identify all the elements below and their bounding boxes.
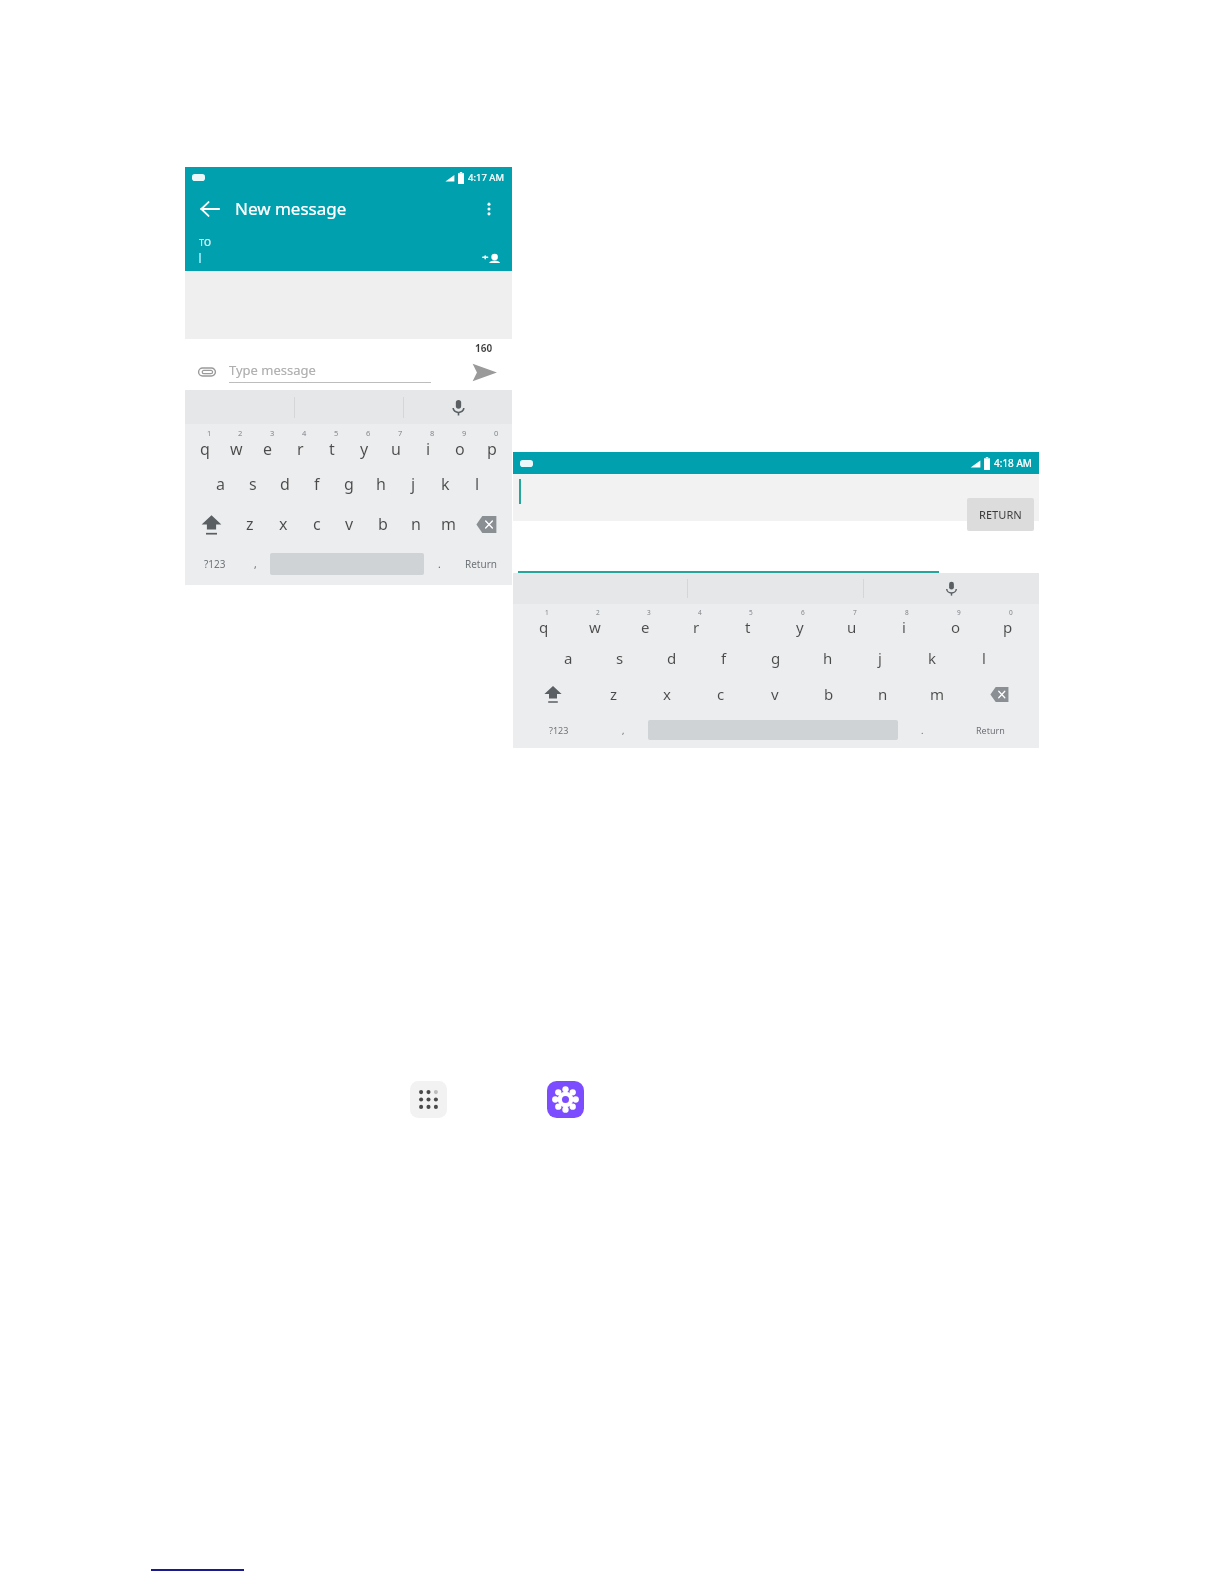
button[interactable]: x (640, 676, 694, 712)
staticText: 6 (366, 428, 371, 438)
button[interactable]: , (240, 544, 270, 584)
staticText: 160 (475, 341, 493, 355)
button[interactable]: Type message (229, 361, 470, 383)
button[interactable]: ?123 (518, 712, 599, 748)
button[interactable]: Return (947, 712, 1034, 748)
button[interactable]: x (267, 504, 300, 544)
button[interactable]: 1 (518, 604, 569, 640)
button[interactable]: a (542, 640, 594, 676)
button[interactable]: c (300, 504, 333, 544)
button[interactable]: Back (196, 195, 224, 223)
staticText: p (1003, 617, 1013, 637)
button[interactable]: More options (476, 196, 501, 221)
button[interactable]: ?123 (189, 544, 240, 584)
button[interactable]: 5 (316, 424, 348, 464)
button[interactable]: 1 (189, 424, 220, 464)
button[interactable]: g (333, 464, 365, 504)
staticText: p (487, 438, 497, 460)
staticText: t (745, 617, 751, 637)
button[interactable]: . (424, 544, 454, 584)
button[interactable]: 4 (284, 424, 316, 464)
button[interactable]: j (854, 640, 906, 676)
button[interactable]: z (587, 676, 640, 712)
staticText: g (344, 473, 354, 495)
button[interactable]: 3 (620, 604, 671, 640)
button[interactable]: 7 (380, 424, 412, 464)
button[interactable]: Voice input (404, 390, 512, 424)
button[interactable]: n (856, 676, 910, 712)
button[interactable]: 8 (878, 604, 930, 640)
button[interactable]: 9 (444, 424, 476, 464)
button[interactable]: l (958, 640, 1010, 676)
button[interactable]: Apps (410, 1081, 447, 1118)
button[interactable]: 7 (826, 604, 878, 640)
button[interactable]: 8 (412, 424, 444, 464)
button[interactable]: RETURN (967, 498, 1034, 531)
button[interactable]: h (365, 464, 397, 504)
button[interactable]: Voice input (441, 390, 475, 424)
button[interactable]: Voice input (864, 573, 1039, 604)
button[interactable]: Return (454, 544, 508, 584)
button[interactable]: 6 (774, 604, 826, 640)
button[interactable]: d (269, 464, 301, 504)
button[interactable]: v (748, 676, 802, 712)
staticText: l (982, 648, 986, 668)
button[interactable]: 4 (671, 604, 722, 640)
button[interactable]: 0 (982, 604, 1034, 640)
button[interactable]: k (906, 640, 958, 676)
button[interactable]: 2 (569, 604, 620, 640)
button[interactable]: s (594, 640, 646, 676)
button[interactable]: c (694, 676, 748, 712)
staticText: 4 (302, 428, 307, 438)
button[interactable]: f (698, 640, 750, 676)
button[interactable]: 2 (220, 424, 252, 464)
button[interactable]: 5 (722, 604, 774, 640)
staticText: 9 (462, 428, 467, 438)
button[interactable]: Voice input (936, 573, 967, 604)
button[interactable]: Shift (518, 676, 587, 712)
button[interactable]: j (397, 464, 429, 504)
button[interactable]: 6 (348, 424, 380, 464)
button[interactable]: 3 (252, 424, 284, 464)
button[interactable] (513, 521, 1039, 573)
staticText: x (663, 684, 671, 704)
staticText: q (200, 438, 210, 460)
button[interactable]: m (432, 504, 465, 544)
button[interactable]: Backspace (465, 504, 508, 544)
button[interactable]: k (429, 464, 461, 504)
button[interactable]: h (802, 640, 854, 676)
button[interactable]: g (750, 640, 802, 676)
button[interactable]: a (204, 464, 237, 504)
button[interactable]: z (233, 504, 267, 544)
button[interactable]: n (399, 504, 432, 544)
button[interactable] (513, 474, 1039, 521)
staticText: w (589, 617, 601, 637)
staticText: c (313, 513, 321, 535)
button[interactable]: m (910, 676, 964, 712)
button[interactable]: 0 (476, 424, 508, 464)
staticText: f (314, 473, 320, 495)
button[interactable]: Settings (547, 1081, 584, 1118)
button[interactable]: f (301, 464, 333, 504)
button[interactable]: Backspace (964, 676, 1034, 712)
button[interactable]: Add contact (481, 253, 502, 265)
button[interactable]: Send (470, 358, 499, 387)
button[interactable]: Shift (189, 504, 233, 544)
button[interactable]: Attach (195, 360, 219, 384)
button[interactable]: v (333, 504, 366, 544)
button[interactable]: b (366, 504, 399, 544)
button[interactable]: l (461, 464, 493, 504)
button[interactable]: s (237, 464, 269, 504)
button[interactable]: d (646, 640, 698, 676)
button[interactable]: 9 (930, 604, 982, 640)
button[interactable]: b (802, 676, 856, 712)
